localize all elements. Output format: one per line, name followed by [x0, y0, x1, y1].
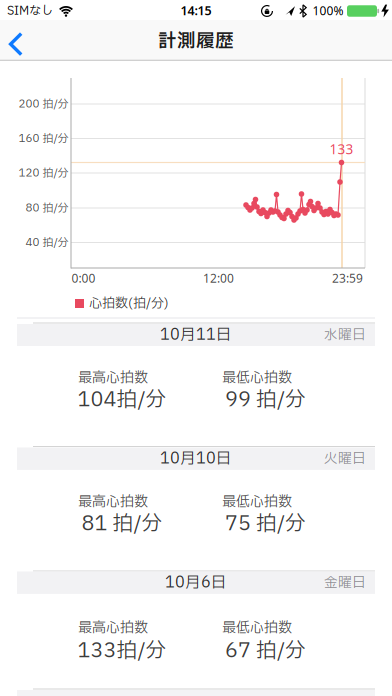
staticText: 0:00 [71, 270, 95, 286]
staticText: 最高心拍数 [78, 617, 148, 638]
staticText: 104拍/分 [77, 385, 166, 415]
staticText: 99 拍/分 [225, 385, 306, 415]
staticText: 133拍/分 [77, 636, 166, 666]
staticText: 水曜日 [324, 325, 366, 345]
staticText: 最高心拍数 [78, 367, 148, 388]
staticText: 14:15 [180, 2, 211, 19]
staticText: 81 拍/分 [81, 509, 162, 539]
staticText: 75 拍/分 [225, 509, 306, 539]
staticText: 23:59 [332, 270, 363, 286]
staticText: 12:00 [203, 270, 234, 286]
staticText: 心拍数(拍/分) [89, 294, 169, 313]
staticText: 67 拍/分 [225, 636, 306, 666]
staticText: 120 拍/分 [18, 165, 68, 181]
staticText: 160 拍/分 [18, 130, 68, 147]
staticText: 40 拍/分 [25, 234, 68, 251]
staticText: SIMなし [7, 2, 53, 20]
staticText: 10月6日 [165, 571, 227, 594]
staticText: 火曜日 [324, 449, 366, 469]
staticText: 金曜日 [324, 573, 366, 593]
staticText: 最高心拍数 [78, 491, 148, 512]
staticText: 最低心拍数 [222, 617, 292, 638]
button[interactable]: 戻る [0, 20, 36, 60]
staticText: 最低心拍数 [222, 367, 292, 388]
staticText: 100% [312, 2, 343, 19]
staticText: 80 拍/分 [25, 200, 68, 216]
staticText: 10月10日 [160, 447, 232, 470]
staticText: 計測履歴 [158, 28, 234, 55]
staticText: 133 [329, 140, 353, 158]
staticText: 10月11日 [160, 323, 232, 347]
staticText: 最低心拍数 [222, 491, 292, 512]
staticText: 200 拍/分 [18, 96, 68, 112]
